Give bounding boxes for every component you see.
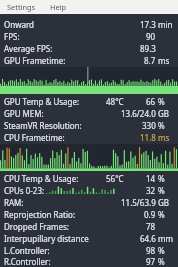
staticText: 32 — [146, 185, 156, 196]
staticText: Reprojection Ratio: — [4, 209, 76, 220]
staticText: CPU Frametime: — [4, 132, 65, 143]
staticText: CPU Temp & Usage: — [4, 173, 79, 184]
staticText: CPUs 0-23: — [4, 185, 45, 196]
staticText: GPU MEM: — [4, 108, 44, 119]
staticText: ms — [158, 55, 170, 66]
button[interactable]: FPS: — [0, 30, 178, 42]
button[interactable]: GPU Frametime: — [0, 54, 178, 66]
button[interactable]: R.Controller: — [0, 256, 178, 267]
staticText: 14 — [146, 173, 156, 184]
button[interactable]: L.Controller: — [0, 244, 178, 256]
staticText: Onward — [4, 19, 35, 30]
button[interactable]: Dropped Frames: — [0, 220, 178, 232]
button[interactable]: CPU Temp & Usage: — [0, 172, 178, 184]
button[interactable]: Interpupillary distance — [0, 232, 178, 244]
staticText: Average FPS: — [4, 43, 53, 54]
button[interactable]: RAM: — [0, 196, 178, 208]
staticText: 8.7 — [144, 55, 156, 66]
staticText: % — [158, 185, 165, 196]
staticText: GPU Temp & Usage: — [4, 96, 80, 107]
staticText: 97 — [146, 256, 156, 267]
staticText: Interpupillary distance — [4, 233, 89, 244]
staticText: L.Controller: — [4, 245, 50, 256]
staticText: 56°C — [106, 173, 124, 184]
staticText: % — [158, 245, 165, 256]
staticText: % — [158, 120, 165, 131]
staticText: RAM: — [4, 197, 24, 208]
staticText: 66 — [146, 96, 156, 107]
button[interactable]: Settings — [7, 2, 36, 12]
staticText: % — [158, 256, 165, 267]
button[interactable]: Onward — [0, 18, 178, 30]
staticText: 78 — [146, 221, 156, 232]
staticText: 13.6/24.0 — [121, 108, 156, 119]
button[interactable]: GPU Temp & Usage: — [0, 95, 178, 107]
staticText: R.Controller: — [4, 256, 51, 267]
button[interactable]: CPUs 0-23: — [0, 184, 178, 196]
button[interactable]: Reprojection Ratio: — [0, 208, 178, 220]
button[interactable]: Help — [50, 2, 67, 12]
staticText: Help — [50, 2, 67, 12]
button[interactable]: SteamVR Resolution: — [0, 119, 178, 131]
staticText: ms — [158, 132, 170, 143]
staticText: mm — [158, 233, 173, 244]
staticText: GPU Frametime: — [4, 55, 66, 66]
staticText: % — [158, 173, 165, 184]
staticText: Dropped Frames: — [4, 221, 69, 232]
staticText: Settings — [7, 2, 36, 12]
staticText: 11.8 — [140, 132, 156, 143]
staticText: 64.6 — [140, 233, 156, 244]
staticText: % — [158, 209, 165, 220]
button[interactable]: Average FPS: — [0, 42, 178, 54]
staticText: 90 — [146, 31, 156, 42]
staticText: % — [158, 96, 165, 107]
button[interactable]: GPU MEM: — [0, 107, 178, 119]
staticText: min — [158, 19, 173, 30]
staticText: 330 — [142, 120, 156, 131]
staticText: 98 — [146, 245, 156, 256]
staticText: FPS: — [4, 31, 20, 42]
staticText: 0.9 — [144, 209, 156, 220]
staticText: SteamVR Resolution: — [4, 120, 82, 131]
staticText: 89.3 — [140, 43, 156, 54]
staticText: 48°C — [106, 96, 124, 107]
button[interactable]: CPU Frametime: — [0, 131, 178, 143]
staticText: 11.5/63.9 — [121, 197, 156, 208]
staticText: 17.3 — [140, 19, 156, 30]
staticText: GB — [158, 108, 170, 119]
staticText: GB — [158, 197, 170, 208]
